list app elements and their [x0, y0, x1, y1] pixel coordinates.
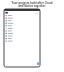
button[interactable] [4, 30, 40, 32]
button[interactable] [4, 26, 40, 28]
button[interactable] [4, 32, 40, 34]
button[interactable] [4, 34, 40, 36]
button[interactable] [4, 28, 40, 30]
button[interactable] [4, 24, 40, 26]
button[interactable] [4, 20, 40, 22]
button[interactable] [4, 16, 40, 18]
staticText: Your projects build after Cloud and Nati… [0, 1, 64, 8]
button[interactable] [4, 14, 40, 16]
button[interactable] [4, 22, 40, 24]
button[interactable] [4, 18, 40, 20]
